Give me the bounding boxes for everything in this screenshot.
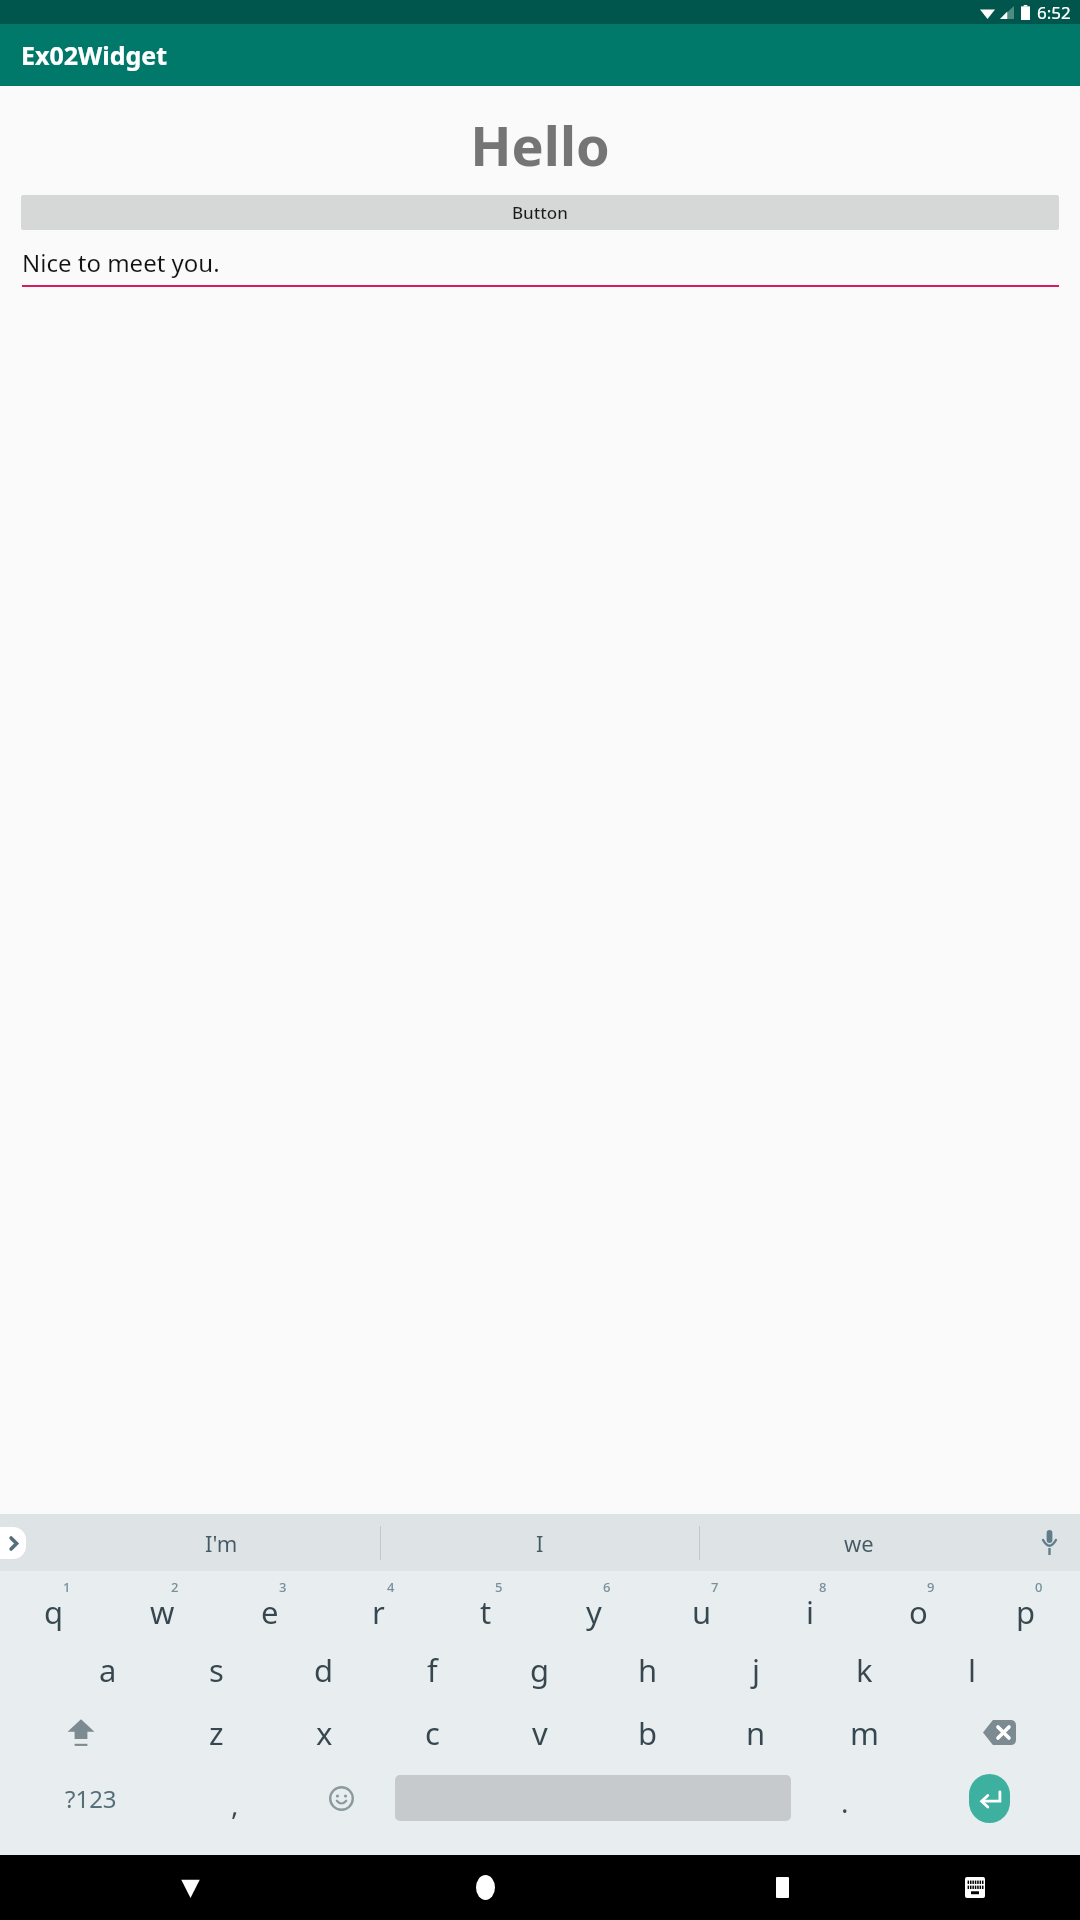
staticText: n [746, 1712, 766, 1754]
button[interactable]: More suggestions [0, 1527, 26, 1559]
button[interactable]: Home [418, 1855, 553, 1920]
staticText: I'm [205, 1528, 238, 1558]
staticText: u [692, 1591, 712, 1633]
button[interactable]: 1 [0, 1575, 108, 1638]
staticText: 6:52 [1037, 1, 1071, 24]
staticText: 0 [1035, 1578, 1043, 1596]
staticText: r [372, 1591, 385, 1633]
button[interactable]: 5 [432, 1575, 540, 1638]
button[interactable]: 3 [216, 1575, 324, 1638]
staticText: 9 [927, 1578, 935, 1596]
staticText: b [638, 1712, 658, 1754]
staticText: 7 [711, 1578, 719, 1596]
staticText: d [314, 1649, 334, 1691]
button[interactable]: g [486, 1638, 594, 1701]
staticText: Hello [0, 108, 1080, 182]
button[interactable]: a [54, 1638, 162, 1701]
staticText: l [968, 1649, 976, 1691]
button[interactable]: d [270, 1638, 378, 1701]
staticText: . [841, 1783, 849, 1821]
staticText: 3 [279, 1578, 287, 1596]
staticText: we [844, 1528, 874, 1558]
staticText: I [536, 1528, 544, 1558]
staticText: Nice to meet you. [22, 246, 220, 279]
staticText: e [261, 1591, 279, 1633]
button[interactable]: 0 [972, 1575, 1080, 1638]
button[interactable]: Recents [715, 1855, 850, 1920]
staticText: 1 [63, 1578, 71, 1596]
staticText: p [1016, 1591, 1036, 1633]
staticText: o [909, 1591, 928, 1633]
button[interactable]: . [791, 1764, 898, 1832]
button[interactable]: 7 [648, 1575, 756, 1638]
staticText: 6 [603, 1578, 611, 1596]
staticText: a [99, 1649, 117, 1691]
staticText: c [425, 1712, 440, 1754]
button[interactable]: we [700, 1514, 1018, 1571]
button[interactable]: n [702, 1701, 810, 1764]
staticText: q [44, 1591, 64, 1633]
button[interactable]: 6 [540, 1575, 648, 1638]
staticText: ?123 [65, 1782, 117, 1815]
button[interactable]: Button [21, 195, 1059, 230]
staticText: Ex02Widget [21, 38, 168, 72]
button[interactable]: ?123 [0, 1764, 181, 1832]
staticText: x [316, 1712, 333, 1754]
staticText: w [150, 1591, 175, 1633]
button[interactable]: c [378, 1701, 486, 1764]
staticText: 2 [171, 1578, 179, 1596]
button[interactable]: 2 [108, 1575, 216, 1638]
button[interactable]: Backspace [918, 1701, 1080, 1764]
button[interactable]: j [702, 1638, 810, 1701]
staticText: , [231, 1785, 239, 1823]
button[interactable]: f [378, 1638, 486, 1701]
button[interactable]: Nice to meet you. [22, 246, 1059, 287]
button[interactable]: z [162, 1701, 270, 1764]
button[interactable]: 9 [864, 1575, 972, 1638]
button[interactable]: b [594, 1701, 702, 1764]
button[interactable]: I [381, 1514, 699, 1571]
staticText: y [586, 1591, 602, 1633]
staticText: t [480, 1591, 492, 1633]
button[interactable]: Voice input [1018, 1514, 1080, 1571]
button[interactable]: , [181, 1764, 288, 1832]
button[interactable]: I'm [62, 1514, 380, 1571]
button[interactable]: Hide keyboard [123, 1855, 257, 1920]
staticText: i [806, 1591, 814, 1633]
staticText: g [530, 1649, 550, 1691]
staticText: 5 [495, 1578, 503, 1596]
button[interactable]: Emoji [288, 1764, 395, 1832]
button[interactable]: x [270, 1701, 378, 1764]
button[interactable]: 4 [324, 1575, 432, 1638]
staticText: j [752, 1649, 760, 1691]
button[interactable]: m [810, 1701, 918, 1764]
button[interactable]: v [486, 1701, 594, 1764]
button[interactable]: Switch keyboard [907, 1855, 1042, 1920]
button[interactable]: k [810, 1638, 918, 1701]
button[interactable]: h [594, 1638, 702, 1701]
button[interactable]: l [918, 1638, 1026, 1701]
staticText: f [427, 1649, 438, 1691]
button[interactable]: s [162, 1638, 270, 1701]
staticText: 8 [819, 1578, 827, 1596]
staticText: h [638, 1649, 658, 1691]
staticText: m [850, 1712, 879, 1754]
button[interactable]: Enter [898, 1764, 1080, 1832]
staticText: s [209, 1649, 224, 1691]
staticText: k [856, 1649, 873, 1691]
staticText: Button [512, 201, 568, 224]
staticText: z [209, 1712, 224, 1754]
staticText: 4 [387, 1578, 395, 1596]
staticText: v [532, 1712, 548, 1754]
button[interactable]: 8 [756, 1575, 864, 1638]
button[interactable]: Shift [0, 1701, 162, 1764]
